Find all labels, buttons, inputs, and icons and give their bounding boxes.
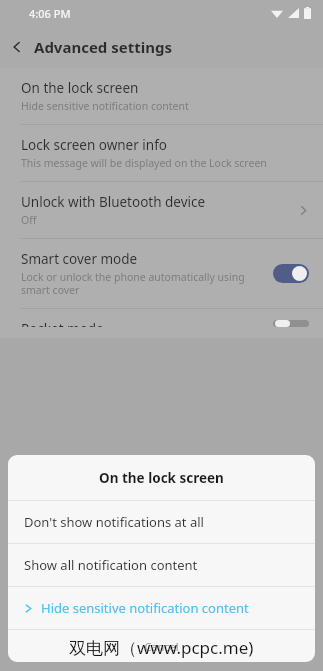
staticText: Lock or unlock the phone automatically u…: [21, 270, 265, 297]
button[interactable]: Pocket mode: [0, 309, 323, 338]
button[interactable]: Smart cover mode: [0, 239, 323, 308]
staticText: Hide sensitive notification content: [41, 599, 249, 617]
staticText: Off: [21, 213, 37, 227]
staticText: Don't show notifications at all: [24, 513, 204, 531]
button[interactable]: Cancel: [8, 630, 315, 662]
button[interactable]: Toggle off: [273, 320, 309, 327]
button[interactable]: Hide sensitive notification content: [8, 587, 315, 629]
staticText: Lock screen owner info: [21, 136, 167, 154]
staticText: Pocket mode: [21, 320, 104, 327]
staticText: Smart cover mode: [21, 250, 138, 268]
button[interactable]: Unlock with Bluetooth device: [0, 182, 323, 238]
staticText: Cancel: [144, 639, 179, 654]
button[interactable]: Toggle on: [273, 264, 309, 283]
button[interactable]: Lock screen owner info: [0, 125, 323, 181]
button[interactable]: Don't show notifications at all: [8, 501, 315, 543]
staticText: Unlock with Bluetooth device: [21, 193, 206, 211]
staticText: Advanced settings: [34, 37, 172, 57]
button[interactable]: Show all notification content: [8, 544, 315, 586]
staticText: On the lock screen: [21, 79, 139, 97]
staticText: On the lock screen: [99, 469, 224, 487]
staticText: 双电网（www.pcpc.me): [69, 636, 254, 659]
staticText: Hide sensitive notification content: [21, 99, 189, 113]
button[interactable]: Back: [0, 30, 34, 64]
button[interactable]: On the lock screen: [0, 68, 323, 124]
staticText: Show all notification content: [24, 556, 198, 574]
staticText: 4:06 PM: [29, 6, 71, 21]
staticText: This message will be displayed on the Lo…: [21, 156, 267, 170]
